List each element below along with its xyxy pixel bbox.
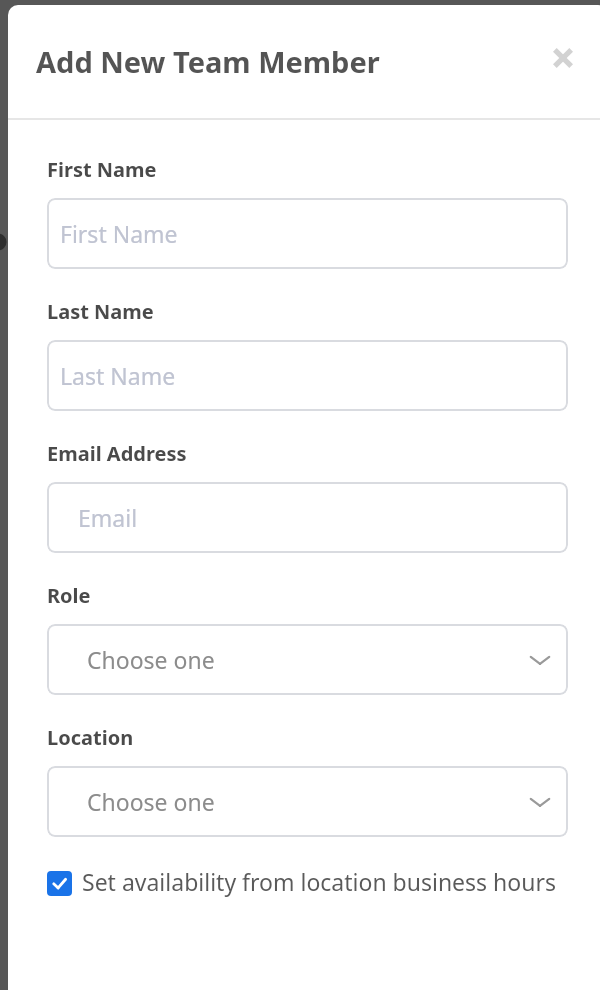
button[interactable]: First Name xyxy=(47,198,568,269)
staticText: Set availability from location business … xyxy=(82,866,556,897)
button[interactable]: Choose one xyxy=(47,624,568,695)
staticText: Last Name xyxy=(60,360,176,391)
staticText: First Name xyxy=(60,218,178,249)
button[interactable]: Close xyxy=(541,36,585,80)
staticText: Choose one xyxy=(87,644,215,675)
button[interactable]: Email xyxy=(47,482,568,553)
staticText: Add New Team Member xyxy=(36,42,380,81)
staticText: Email Address xyxy=(47,440,187,467)
staticText: Last Name xyxy=(47,298,154,325)
button[interactable]: Choose one xyxy=(47,766,568,837)
staticText: Choose one xyxy=(87,786,215,817)
staticText: Email xyxy=(78,502,138,533)
staticText: First Name xyxy=(47,156,157,183)
button[interactable]: Set availability from location business … xyxy=(47,866,568,897)
button[interactable]: Last Name xyxy=(47,340,568,411)
staticText: Location xyxy=(47,724,134,751)
staticText: Role xyxy=(47,582,91,609)
